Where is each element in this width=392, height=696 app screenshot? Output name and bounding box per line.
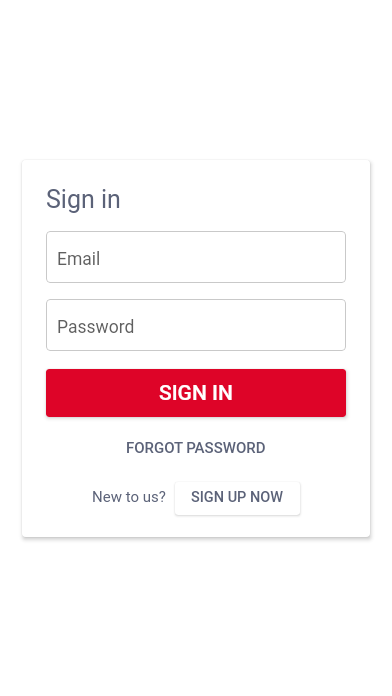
- button[interactable]: SIGN IN: [46, 369, 346, 417]
- button[interactable]: FORGOT PASSWORD: [46, 431, 346, 465]
- staticText: Sign in: [46, 185, 121, 214]
- staticText: Password: [57, 317, 135, 338]
- staticText: New to us?: [92, 488, 166, 506]
- staticText: Email: [57, 249, 101, 270]
- button[interactable]: SIGN UP NOW: [175, 482, 300, 515]
- button[interactable]: Email: [46, 231, 346, 283]
- staticText: FORGOT PASSWORD: [126, 439, 266, 457]
- staticText: SIGN IN: [159, 381, 233, 406]
- staticText: SIGN UP NOW: [191, 489, 284, 506]
- button[interactable]: Password: [46, 299, 346, 351]
